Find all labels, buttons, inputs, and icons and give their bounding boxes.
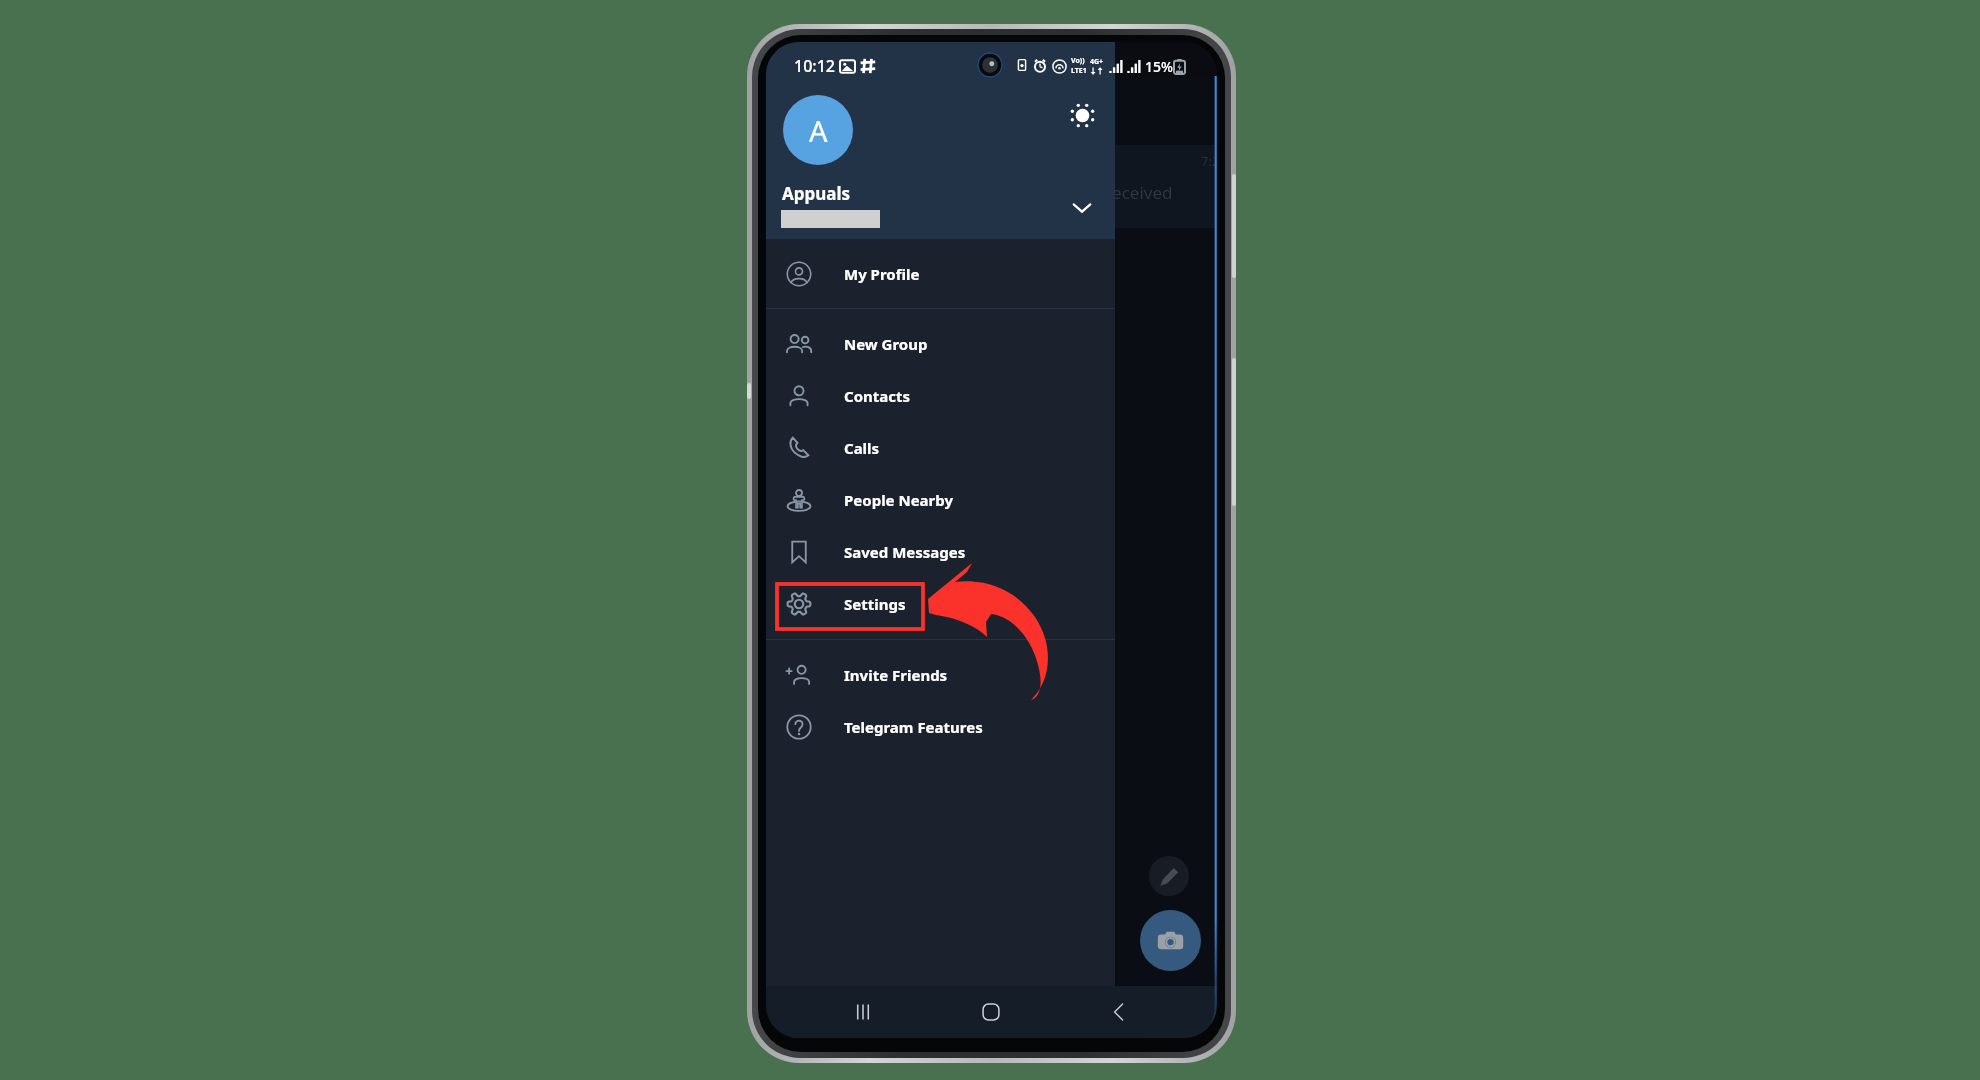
button[interactable]: Expand accounts <box>1064 189 1100 225</box>
staticText: 4G+ <box>1090 57 1104 67</box>
staticText: Invite Friends <box>844 665 948 685</box>
button[interactable]: A <box>783 95 853 165</box>
button[interactable]: Telegram Features <box>766 701 1115 753</box>
staticText: Calls <box>844 438 880 458</box>
staticText: we received a. <box>1078 181 1180 227</box>
button[interactable]: Toggle night mode <box>1063 96 1101 134</box>
button[interactable]: Calls <box>766 422 1115 474</box>
staticText: Appuals <box>782 182 851 205</box>
staticText: 10:12 <box>794 55 835 77</box>
button[interactable]: Contacts <box>766 370 1115 422</box>
staticText: My Profile <box>844 264 920 284</box>
button[interactable]: Home <box>967 988 1015 1036</box>
staticText: Settings <box>844 594 906 614</box>
button[interactable]: Back <box>1095 988 1143 1036</box>
button[interactable]: Settings <box>766 578 1115 630</box>
button[interactable]: People Nearby <box>766 474 1115 526</box>
button[interactable]: New message <box>1149 856 1189 896</box>
button[interactable]: Recent apps <box>839 988 887 1036</box>
staticText: 7:2 <box>1201 152 1217 170</box>
staticText: 15% <box>1145 57 1173 76</box>
staticText: Contacts <box>844 386 911 406</box>
staticText: People Nearby <box>844 490 954 510</box>
staticText: New Group <box>844 334 928 354</box>
button[interactable]: New Group <box>766 318 1115 370</box>
staticText: A <box>809 111 828 150</box>
button[interactable]: Camera <box>1140 910 1201 971</box>
staticText: Telegram Features <box>844 717 983 737</box>
button[interactable]: Invite Friends <box>766 649 1115 701</box>
staticText: LTE1 <box>1071 66 1087 76</box>
button[interactable]: Saved Messages <box>766 526 1115 578</box>
staticText: Vo)) <box>1071 56 1085 66</box>
staticText: Saved Messages <box>844 542 966 562</box>
button[interactable]: My Profile <box>766 239 1115 308</box>
